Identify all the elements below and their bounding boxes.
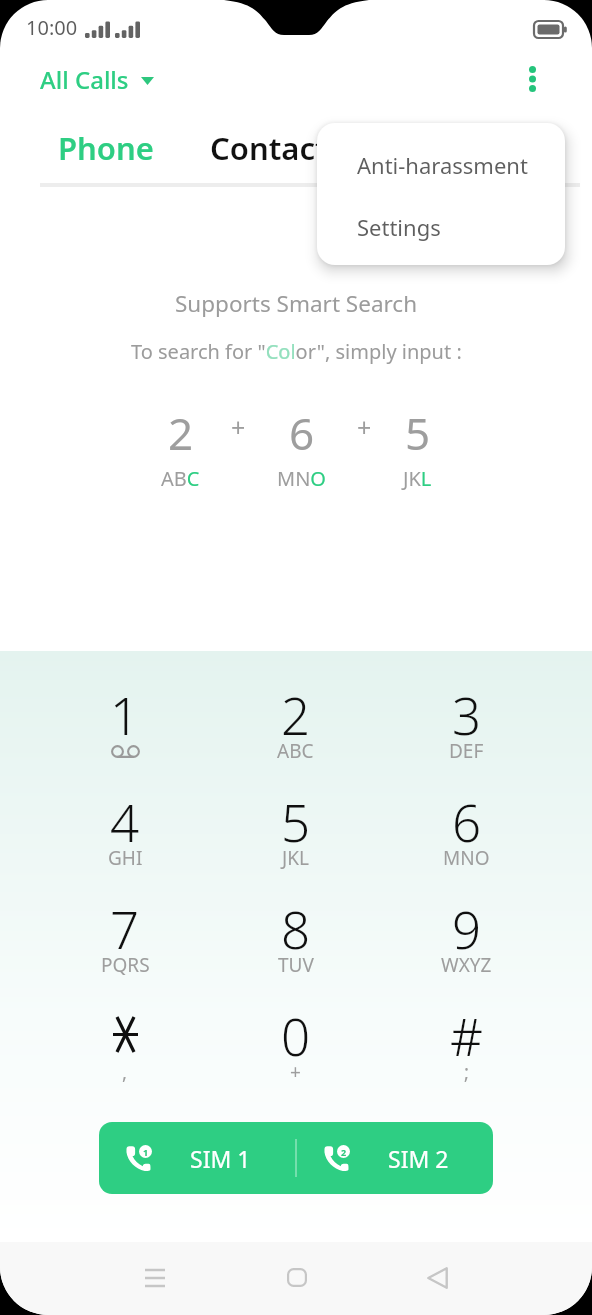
staticText: 3 [452, 680, 482, 749]
staticText: ABC [161, 465, 200, 492]
button[interactable]: 1 [40, 677, 210, 784]
button[interactable]: Phone [46, 119, 166, 177]
staticText: PQRS [101, 952, 150, 978]
staticText: 1 [110, 680, 140, 749]
staticText: WXYZ [441, 952, 492, 978]
staticText: 5 [405, 403, 431, 463]
staticText: , [122, 1059, 128, 1085]
button[interactable]: 8 [210, 891, 381, 998]
staticText: 10:00 [26, 14, 78, 41]
button[interactable]: 2 [297, 1122, 493, 1194]
staticText: To search for "Color", simply input : [131, 338, 462, 365]
staticText: ABC [277, 738, 314, 764]
staticText: 2 [168, 403, 194, 463]
button[interactable]: Anti-harassment [317, 134, 565, 196]
button[interactable]: 4 [40, 784, 210, 891]
staticText: 6 [289, 403, 315, 463]
staticText: 0 [281, 1001, 311, 1070]
staticText: JKL [282, 845, 309, 871]
staticText: 2 [341, 1146, 347, 1158]
staticText: JKL [403, 465, 432, 492]
staticText: 8 [281, 894, 311, 963]
staticText: 1 [143, 1146, 149, 1158]
button[interactable]: , [40, 998, 210, 1105]
staticText: TUV [278, 952, 314, 978]
staticText: All Calls [40, 63, 129, 96]
staticText: 7 [110, 894, 140, 963]
button[interactable]: 0 [210, 998, 381, 1105]
button[interactable]: 5 [210, 784, 381, 891]
button[interactable]: 6 [381, 784, 552, 891]
staticText: MNO [443, 845, 490, 871]
staticText: 5 [281, 787, 311, 856]
staticText: 6 [452, 787, 482, 856]
staticText: Anti-harassment [357, 150, 528, 180]
button[interactable]: More options [512, 59, 552, 99]
staticText: + [290, 1059, 301, 1085]
button[interactable]: 1 [99, 1122, 295, 1194]
staticText: ; [464, 1059, 470, 1085]
staticText: + [357, 410, 372, 444]
staticText: GHI [108, 845, 143, 871]
staticText: 4 [110, 787, 140, 856]
staticText: 9 [452, 894, 482, 963]
button[interactable]: 3 [381, 677, 552, 784]
staticText: Phone [58, 127, 154, 169]
button[interactable]: Back [367, 1242, 508, 1315]
staticText: 2 [281, 680, 311, 749]
staticText: SIM 1 [190, 1143, 251, 1174]
button[interactable]: Settings [317, 196, 565, 258]
staticText: # [450, 1001, 483, 1070]
button[interactable]: 7 [40, 891, 210, 998]
staticText: SIM 2 [388, 1143, 449, 1174]
staticText: Supports Smart Search [175, 288, 418, 319]
staticText: Contacts [210, 127, 343, 169]
button[interactable]: All Calls [34, 59, 160, 100]
staticText: Settings [357, 212, 441, 242]
button[interactable]: Recent apps [84, 1242, 226, 1315]
staticText: MNO [277, 465, 326, 492]
button[interactable]: Contacts [198, 119, 355, 177]
staticText: + [231, 410, 246, 444]
staticText: DEF [449, 738, 484, 764]
button[interactable]: 9 [381, 891, 552, 998]
button[interactable]: # [381, 998, 552, 1105]
button[interactable]: 2 [210, 677, 381, 784]
button[interactable]: Home [226, 1242, 367, 1315]
